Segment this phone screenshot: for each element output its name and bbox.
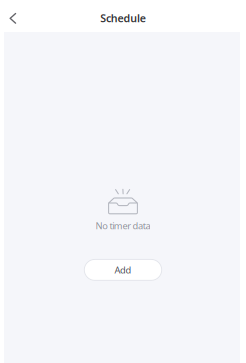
staticText: No timer data [96, 219, 150, 232]
button[interactable]: Back [0, 0, 26, 32]
staticText: Schedule [100, 11, 146, 25]
staticText: Add [114, 264, 132, 276]
button[interactable]: Add [84, 259, 162, 281]
